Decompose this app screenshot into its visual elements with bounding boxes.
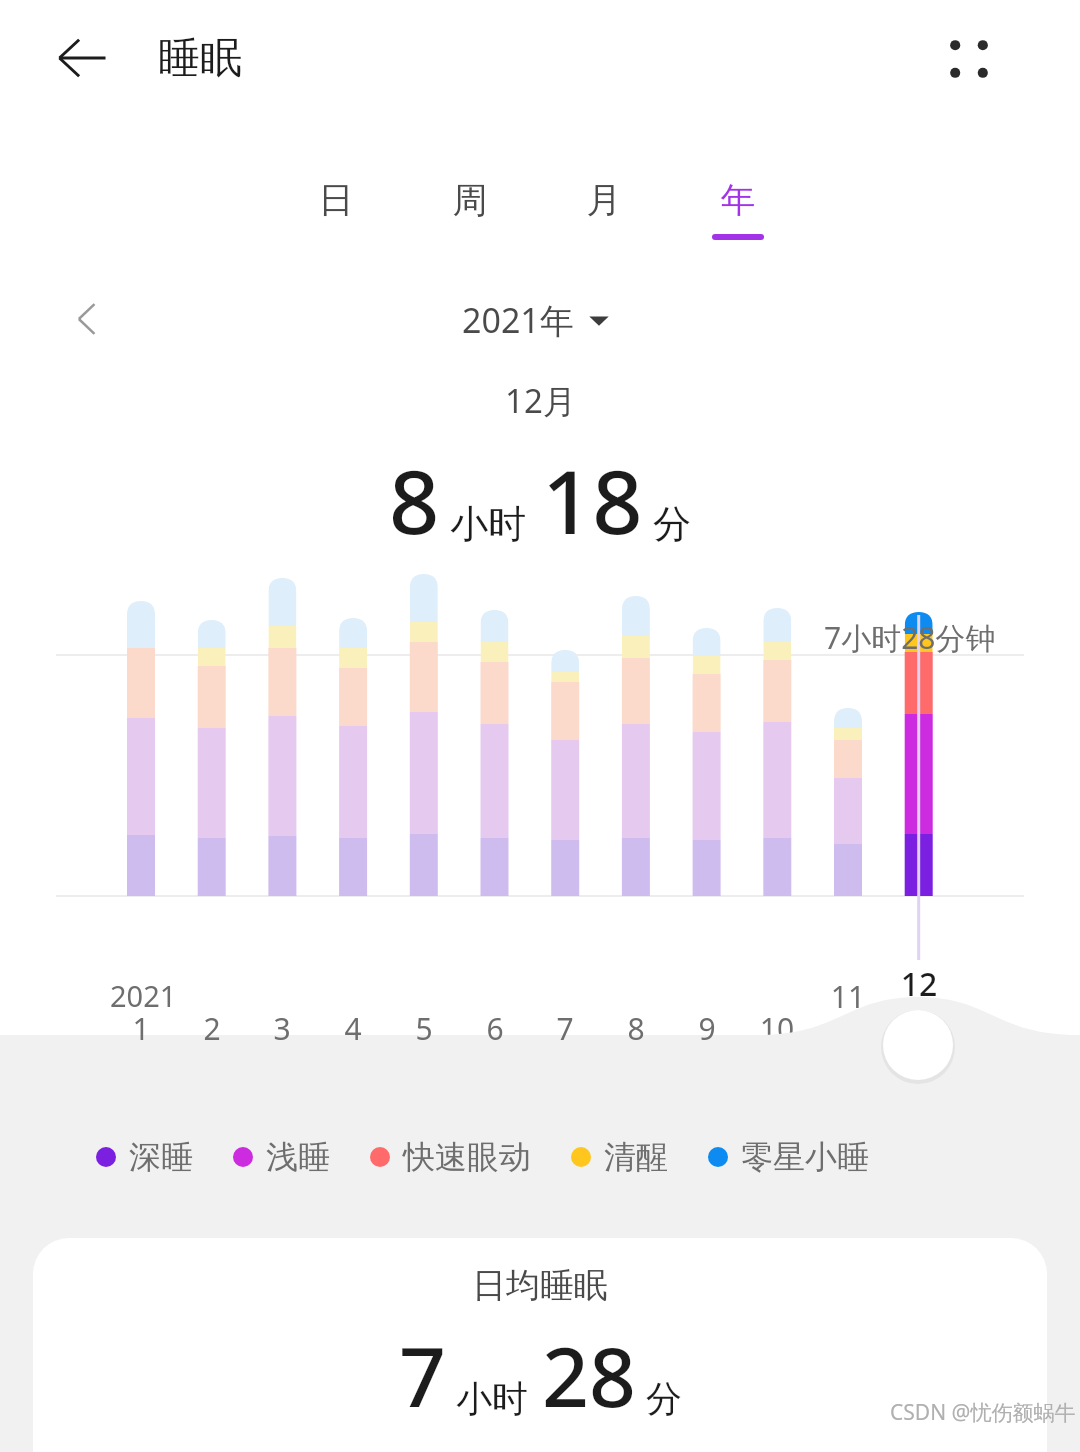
staticText: 1	[111, 1008, 171, 1049]
button[interactable]: 周	[422, 178, 518, 234]
staticText: 清醒	[604, 1137, 668, 1177]
staticText: 深睡	[129, 1137, 193, 1177]
button[interactable]: 日	[288, 178, 384, 234]
staticText: 2021年	[462, 297, 574, 343]
staticText: 11	[818, 976, 878, 1017]
staticText: 年	[690, 178, 786, 222]
staticText: 周	[422, 178, 518, 222]
staticText: 月	[556, 178, 652, 222]
staticText: 6	[465, 1008, 525, 1049]
button[interactable]: Back	[48, 24, 116, 92]
staticText: 4	[323, 1008, 383, 1049]
staticText: 12月	[505, 378, 576, 423]
staticText: 7小时28分钟	[824, 617, 996, 658]
staticText: 5	[394, 1008, 454, 1049]
button[interactable]: 零星小睡	[708, 1137, 869, 1177]
staticText: 18	[542, 440, 643, 560]
button[interactable]: 月	[556, 178, 652, 234]
staticText: 8	[389, 440, 440, 560]
staticText: 快速眼动	[403, 1137, 531, 1177]
button[interactable]: 2021年	[462, 297, 610, 343]
staticText: 浅睡	[266, 1137, 330, 1177]
button[interactable]: 年	[690, 178, 786, 240]
staticText: 睡眠	[158, 32, 242, 85]
staticText: 小时	[456, 1376, 528, 1421]
button[interactable]: 日均睡眠	[33, 1238, 1047, 1452]
staticText: 12	[889, 962, 949, 1006]
button[interactable]: 快速眼动	[370, 1137, 531, 1177]
staticText: 日	[288, 178, 384, 222]
staticText: 小时	[450, 500, 526, 548]
button[interactable]: More options	[930, 20, 1008, 98]
staticText: 2021	[110, 976, 177, 1015]
staticText: 零星小睡	[741, 1137, 869, 1177]
button[interactable]: 深睡	[96, 1137, 193, 1177]
button[interactable]: Previous year	[56, 288, 118, 350]
staticText: 8	[606, 1008, 666, 1049]
staticText: 2	[182, 1008, 242, 1049]
staticText: 10	[747, 1008, 807, 1049]
staticText: CSDN @忧伤额蜗牛	[890, 1398, 1076, 1427]
button[interactable]: 浅睡	[233, 1137, 330, 1177]
staticText: 7	[399, 1319, 446, 1431]
staticText: 3	[252, 1008, 312, 1049]
staticText: 分	[646, 1376, 682, 1421]
staticText: 28	[542, 1319, 636, 1431]
button[interactable]: 清醒	[571, 1137, 668, 1177]
staticText: 日均睡眠	[472, 1264, 608, 1307]
staticText: 分	[653, 500, 691, 548]
staticText: 7	[535, 1008, 595, 1049]
staticText: 9	[677, 1008, 737, 1049]
